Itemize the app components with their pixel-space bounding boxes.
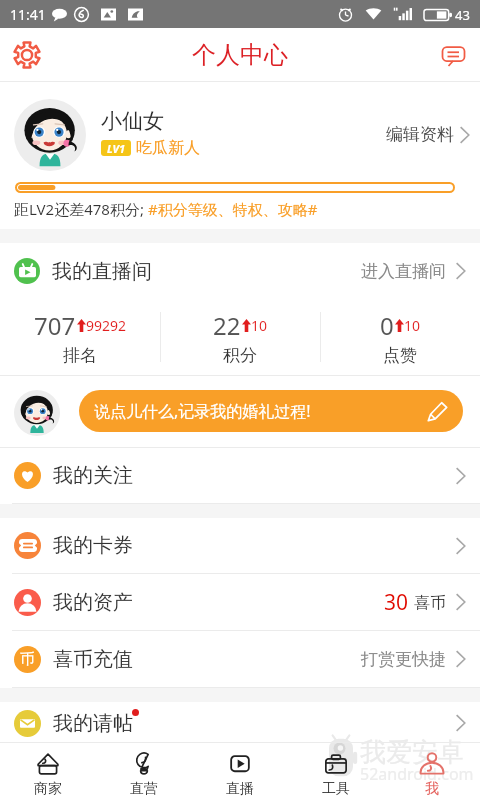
staticText: 52android.com (360, 763, 474, 785)
staticText: 我的直播间 (52, 259, 152, 284)
button[interactable] (14, 99, 86, 171)
staticText: 喜币 (414, 593, 446, 613)
staticText: 707 (34, 309, 76, 342)
staticText: 我 (425, 780, 439, 798)
staticText: 0 (380, 309, 394, 342)
button[interactable]: 我的请帖 (0, 702, 480, 744)
staticText: 直播 (226, 780, 254, 798)
staticText: 点赞 (383, 345, 417, 366)
staticText: 打赏更快捷 (361, 649, 446, 670)
staticText: 我爱安卓 (360, 736, 464, 769)
staticText: LV1 (107, 141, 126, 156)
staticText: 我的资产 (53, 590, 133, 615)
staticText: 编辑资料 (386, 124, 454, 145)
staticText: 我的卡券 (53, 533, 133, 558)
button[interactable]: 我的资产 (0, 574, 480, 630)
button[interactable]: 我的卡券 (0, 518, 480, 573)
staticText: 吃瓜新人 (136, 138, 200, 158)
staticText: 喜币充值 (53, 647, 133, 672)
staticText: 30 (384, 588, 409, 617)
staticText: 小仙女 (101, 108, 164, 134)
staticText: 43 (455, 6, 470, 24)
button[interactable]: 说点儿什么,记录我的婚礼过程! (79, 390, 463, 432)
staticText: 10 (404, 316, 421, 335)
button[interactable]: 我的直播间 (0, 243, 480, 299)
staticText: 商家 (34, 780, 62, 798)
button[interactable]: 商家 (0, 743, 96, 800)
staticText: 排名 (63, 345, 97, 366)
staticText: 进入直播间 (361, 261, 446, 282)
button[interactable]: 工具 (288, 743, 384, 800)
button[interactable]: 0 (320, 299, 480, 375)
staticText: 工具 (322, 780, 350, 798)
button[interactable]: 编辑资料 (386, 124, 470, 145)
button[interactable]: 我的关注 (0, 448, 480, 503)
staticText: 积分 (223, 345, 257, 366)
staticText: 直营 (130, 780, 158, 798)
staticText: 个人中心 (192, 40, 288, 70)
button[interactable]: 22 (160, 299, 320, 375)
button[interactable]: 707 (0, 299, 160, 375)
button[interactable]: 直播 (192, 743, 288, 800)
staticText: 距LV2还差478积分; (14, 199, 148, 219)
staticText: 币 (20, 650, 35, 669)
staticText: 说点儿什么,记录我的婚礼过程! (94, 400, 311, 422)
staticText: #积分等级、特权、攻略# (148, 199, 318, 219)
button[interactable]: Messages (426, 28, 480, 82)
button[interactable]: 币 (0, 631, 480, 687)
staticText: 22 (213, 309, 241, 342)
staticText: 99292 (86, 316, 127, 335)
staticText: 11:41 (10, 5, 46, 24)
button[interactable]: 直营 (96, 743, 192, 800)
button[interactable]: 我 (384, 743, 480, 800)
button[interactable]: Settings (0, 28, 54, 82)
staticText: 我的请帖 (53, 711, 133, 736)
staticText: 我的关注 (53, 463, 133, 488)
staticText: 10 (251, 316, 268, 335)
